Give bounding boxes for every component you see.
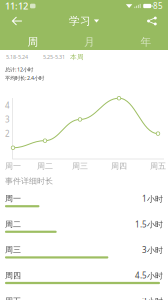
staticText: 周三 — [72, 161, 88, 171]
staticText: 1小时 — [142, 193, 163, 204]
staticText: 本周 — [70, 53, 84, 61]
button[interactable]: 本周 — [70, 50, 88, 63]
button[interactable]: 5.25-5.31 — [43, 50, 73, 63]
staticText: 周四 — [111, 161, 127, 171]
staticText: 3 — [5, 114, 10, 125]
staticText: 5.18-5.24 — [6, 53, 28, 61]
staticText: 周一 — [5, 161, 21, 171]
button[interactable]: Back — [4, 11, 30, 31]
staticText: 月 — [84, 35, 95, 48]
button[interactable]: 月 — [61, 35, 118, 49]
button[interactable]: 5.18-5.24 — [6, 50, 42, 63]
button[interactable]: 周 — [5, 35, 61, 49]
staticText: 4 — [5, 100, 10, 111]
staticText: 4.5小时 — [135, 270, 163, 281]
staticText: 2小时 — [142, 296, 163, 300]
staticText: 周 — [27, 35, 38, 48]
button[interactable]: 年 — [118, 35, 168, 49]
staticText: 2 — [5, 128, 10, 139]
button[interactable]: 周二 — [0, 218, 168, 244]
button[interactable]: 周一 — [0, 193, 168, 218]
staticText: 3小时 — [142, 245, 163, 255]
staticText: 周五 — [5, 296, 21, 300]
button[interactable]: Share — [139, 11, 165, 31]
staticText: 11:12 — [5, 0, 28, 12]
staticText: 平均时长: 2.4小时 — [5, 74, 44, 82]
staticText: 周四 — [5, 271, 21, 280]
staticText: 周五 — [150, 161, 166, 171]
button[interactable]: 周三 — [0, 244, 168, 269]
staticText: 周二 — [37, 161, 53, 171]
button[interactable]: 周五 — [0, 295, 168, 300]
staticText: 85 — [153, 1, 163, 11]
button[interactable]: 学习 — [64, 11, 104, 31]
staticText: 1.5小时 — [135, 219, 163, 230]
button[interactable]: 周四 — [0, 269, 168, 295]
staticText: 周三 — [5, 245, 21, 255]
staticText: 年 — [140, 35, 151, 48]
staticText: 总计: 12小时 — [5, 66, 33, 73]
staticText: 周一 — [5, 194, 21, 204]
staticText: 学习 — [69, 14, 91, 27]
staticText: 周二 — [5, 219, 21, 229]
staticText: 事件详细时长 — [5, 176, 53, 186]
staticText: 5.25-5.31 — [43, 53, 65, 61]
